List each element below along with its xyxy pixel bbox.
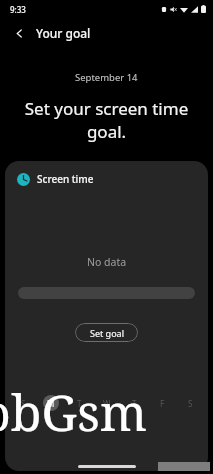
button[interactable]: S	[182, 395, 198, 411]
button[interactable]: S	[15, 395, 31, 411]
staticText: Set goal	[90, 327, 124, 339]
button[interactable]: Back	[6, 20, 32, 46]
staticText: F	[160, 398, 165, 409]
staticText: Your goal	[36, 25, 91, 41]
button[interactable]: Screen time	[5, 161, 208, 471]
staticText: T	[132, 398, 137, 409]
staticText: Set your screen time goal.	[14, 97, 199, 143]
staticText: 9:33	[10, 4, 26, 15]
button[interactable]: F	[154, 395, 170, 411]
button[interactable]: T	[126, 395, 142, 411]
staticText: T	[77, 398, 82, 409]
button[interactable]: W	[99, 395, 115, 411]
staticText: W	[103, 398, 111, 409]
button[interactable]: T	[71, 395, 87, 411]
button[interactable]: M	[43, 395, 59, 411]
staticText: Screen time	[37, 172, 94, 186]
staticText: S	[21, 398, 26, 409]
staticText: No data	[87, 255, 127, 269]
staticText: S	[188, 398, 193, 409]
staticText: M	[47, 398, 55, 409]
staticText: obGsm	[0, 378, 148, 446]
staticText: September 14	[75, 71, 138, 84]
button[interactable]: Set goal	[75, 323, 138, 342]
